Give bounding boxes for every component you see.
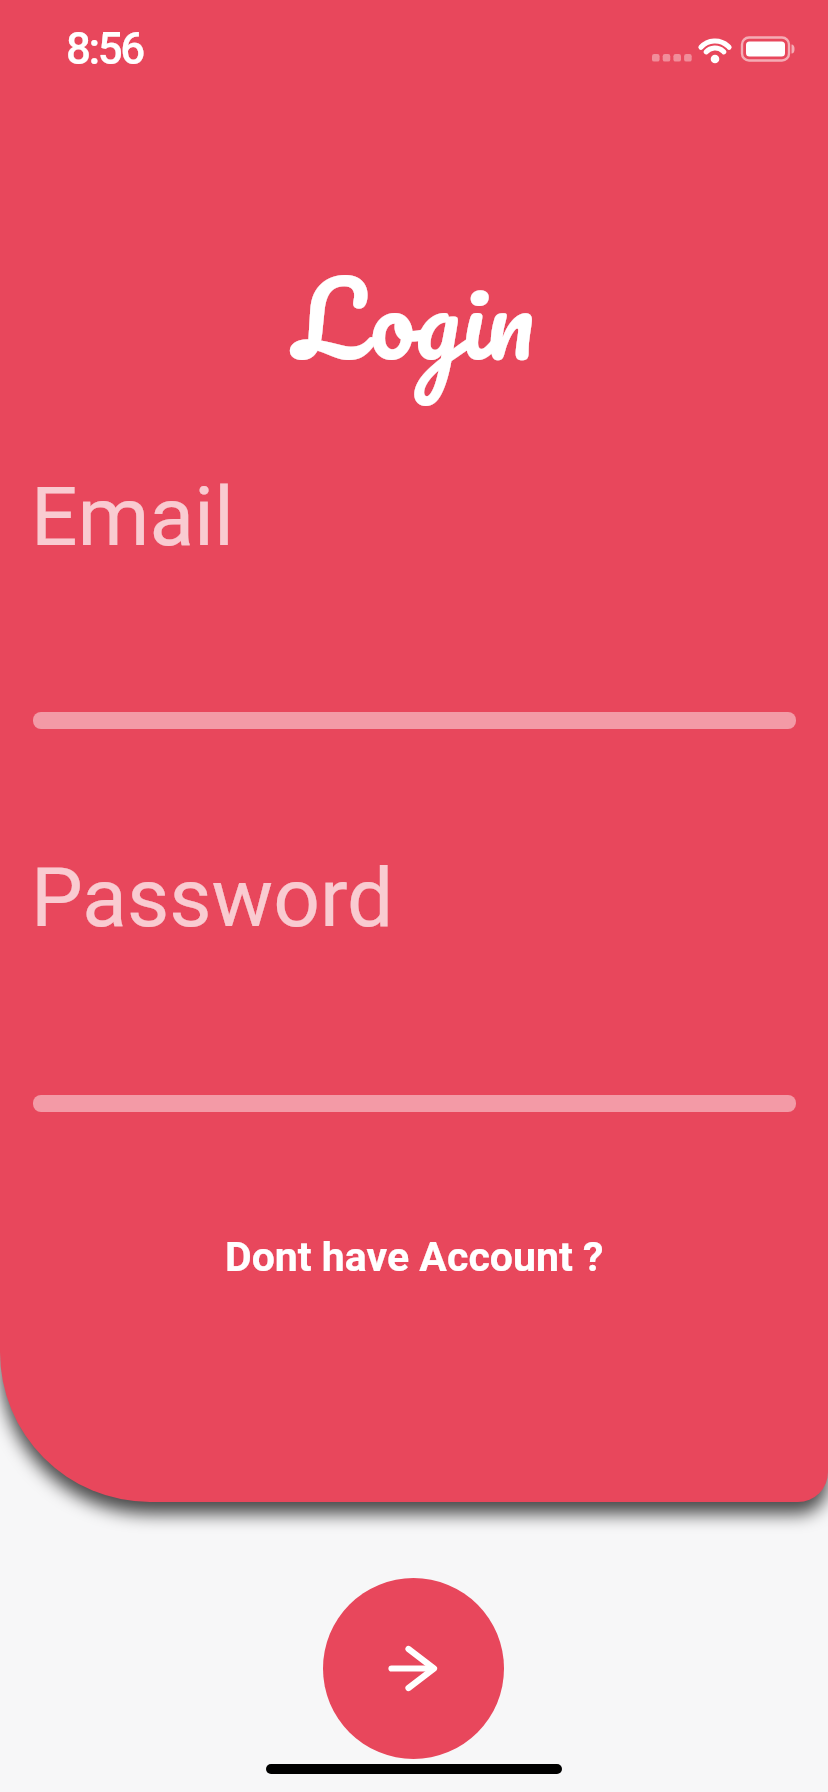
staticText: Email — [31, 469, 234, 565]
staticText: Dont have Account ? — [225, 1233, 604, 1281]
button[interactable]: Email — [0, 469, 828, 565]
button[interactable]: Dont have Account ? — [225, 1233, 604, 1281]
staticText: 8:56 — [66, 23, 143, 75]
button[interactable]: Password — [0, 850, 828, 946]
staticText: Login — [294, 230, 535, 406]
staticText: Password — [31, 850, 394, 946]
button[interactable] — [323, 1578, 504, 1759]
